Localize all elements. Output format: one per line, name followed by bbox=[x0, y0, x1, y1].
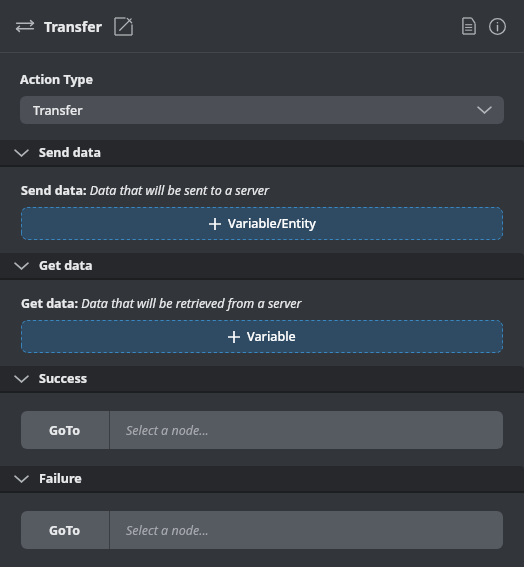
button[interactable]: GoTo bbox=[21, 411, 109, 449]
button[interactable]: Transfer bbox=[14, 15, 36, 37]
button[interactable]: Variable bbox=[21, 320, 503, 353]
button[interactable]: Select a node... bbox=[110, 411, 503, 449]
button[interactable]: Select a node... bbox=[110, 511, 503, 549]
staticText: Success bbox=[39, 370, 87, 387]
button[interactable]: Edit bbox=[112, 15, 134, 37]
button[interactable]: GoTo bbox=[21, 511, 109, 549]
staticText: Send data bbox=[39, 144, 101, 161]
staticText: Variable/Entity bbox=[228, 215, 316, 232]
button[interactable]: Info bbox=[484, 13, 510, 39]
staticText: Variable bbox=[247, 328, 296, 345]
button[interactable]: Variable/Entity bbox=[21, 207, 503, 240]
staticText: Send data: Data that will be sent to a s… bbox=[21, 182, 269, 199]
staticText: Action Type bbox=[20, 71, 93, 88]
staticText: Select a node... bbox=[126, 522, 209, 539]
staticText: GoTo bbox=[49, 422, 81, 439]
button[interactable]: Get data bbox=[0, 253, 524, 278]
staticText: Get data: Data that will be retrieved fr… bbox=[21, 295, 302, 312]
staticText: Transfer bbox=[44, 17, 102, 36]
button[interactable]: Success bbox=[0, 366, 524, 391]
button[interactable]: Send data bbox=[0, 140, 524, 165]
staticText: Get data bbox=[39, 257, 93, 274]
staticText: Transfer bbox=[33, 102, 83, 119]
staticText: GoTo bbox=[49, 522, 81, 539]
staticText: Select a node... bbox=[126, 422, 209, 439]
button[interactable]: Transfer bbox=[20, 96, 504, 124]
staticText: Failure bbox=[39, 470, 82, 487]
button[interactable]: Failure bbox=[0, 466, 524, 491]
button[interactable]: Document bbox=[456, 13, 482, 39]
